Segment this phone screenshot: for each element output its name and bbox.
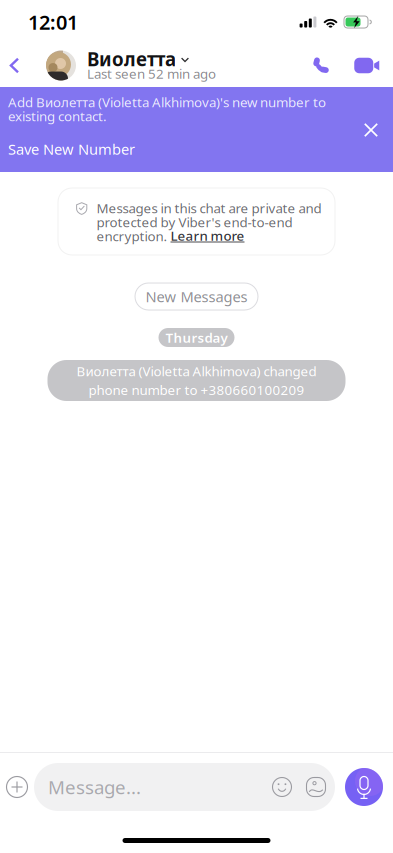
button[interactable]: Call — [298, 44, 344, 87]
button[interactable]: Back — [4, 44, 25, 87]
staticText: Виолетта — [87, 47, 176, 71]
button[interactable]: Stickers — [299, 763, 333, 811]
button[interactable]: Video call — [344, 44, 390, 87]
staticText: Виолетта (Violetta Alkhimova) changed — [76, 362, 316, 380]
button[interactable]: Add attachment — [0, 758, 34, 816]
staticText: existing contact. — [8, 107, 107, 125]
staticText: Save New Number — [8, 139, 135, 159]
staticText: New Messages — [145, 287, 247, 306]
staticText: Message... — [48, 775, 141, 799]
staticText: phone number to +380660100209 — [88, 381, 304, 399]
staticText: Messages in this chat are private and — [96, 199, 321, 217]
button[interactable]: Emoji — [265, 763, 299, 811]
staticText: encryption. — [96, 227, 170, 245]
button[interactable]: Record voice message — [335, 758, 393, 816]
button[interactable]: Виолетта — [25, 44, 216, 87]
button[interactable]: Dismiss — [349, 108, 393, 152]
button[interactable]: Learn more — [170, 230, 244, 242]
staticText: Last seen 52 min ago — [87, 65, 216, 82]
button[interactable]: Save New Number — [8, 142, 135, 156]
staticText: Thursday — [165, 329, 227, 346]
staticText: protected by Viber's end-to-end — [96, 213, 292, 231]
staticText: 12:01 — [28, 9, 78, 35]
staticText: Learn more — [170, 227, 244, 244]
staticText: Add Виолетта (Violetta Alkhimova)'s new … — [8, 93, 326, 111]
